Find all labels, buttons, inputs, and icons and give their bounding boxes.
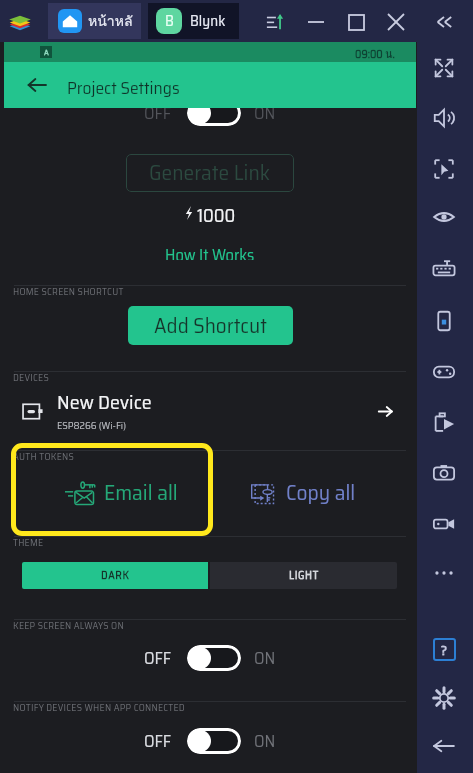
button[interactable]: Add Shortcut: [128, 306, 293, 345]
button[interactable]: Upload: [261, 8, 289, 36]
button[interactable]: Phone: [430, 307, 458, 335]
button[interactable]: Eye: [430, 203, 458, 231]
staticText: ON: [254, 108, 276, 126]
button[interactable]: Maximize: [342, 8, 370, 36]
staticText: DEVICES: [13, 370, 49, 385]
button[interactable]: Gamepad: [430, 358, 458, 386]
button[interactable]: Copy all: [210, 452, 416, 533]
staticText: ?: [441, 639, 448, 661]
button[interactable]: Email all: [4, 452, 210, 533]
button[interactable]: หน้าหลั: [48, 3, 141, 39]
button[interactable]: Close: [382, 8, 410, 36]
staticText: AUTH TOKENS: [13, 449, 75, 464]
button[interactable]: More: [430, 559, 458, 587]
staticText: New Device: [57, 386, 152, 417]
staticText: ESP8266 (Wi-Fi): [57, 417, 127, 433]
button[interactable]: How It Works: [157, 238, 263, 264]
staticText: DARK: [101, 567, 130, 584]
staticText: หน้าหลั: [88, 10, 133, 32]
button[interactable]: Generate Link: [126, 154, 294, 192]
staticText: NOTIFY DEVICES WHEN APP CONNECTED: [13, 700, 185, 715]
button[interactable]: Keyboard: [430, 256, 458, 284]
staticText: HOME SCREEN SHORTCUT: [13, 284, 124, 299]
staticText: A: [44, 46, 49, 58]
staticText: OFF: [144, 728, 172, 755]
staticText: 09:00 น.: [355, 45, 395, 62]
staticText: Project Settings: [67, 74, 180, 102]
button[interactable]: B: [148, 3, 239, 39]
button[interactable]: Help: [430, 635, 458, 663]
button[interactable]: OFF: [4, 716, 416, 766]
staticText: KEEP SCREEN ALWAYS ON: [13, 618, 124, 633]
button[interactable]: Record: [430, 510, 458, 538]
staticText: OFF: [144, 108, 172, 126]
button[interactable]: OFF: [4, 633, 416, 683]
button[interactable]: New Device: [4, 380, 416, 443]
staticText: How It Works: [165, 242, 255, 260]
staticText: Email all: [104, 476, 178, 510]
staticText: Copy all: [286, 476, 356, 510]
button[interactable]: Fullscreen: [430, 54, 458, 82]
button[interactable]: Collapse sidebar: [430, 8, 458, 36]
button[interactable]: LIGHT: [210, 562, 397, 589]
button[interactable]: Settings: [430, 684, 458, 712]
button[interactable]: DARK: [22, 562, 208, 589]
staticText: OFF: [144, 645, 172, 672]
button[interactable]: Script: [430, 409, 458, 437]
button[interactable]: Volume: [430, 104, 458, 132]
staticText: Blynk: [190, 9, 226, 33]
staticText: B: [165, 9, 174, 33]
button[interactable]: Minimize: [302, 8, 330, 36]
staticText: ON: [254, 645, 276, 672]
staticText: LIGHT: [289, 567, 319, 584]
button[interactable]: OFF: [4, 108, 416, 126]
staticText: ON: [254, 728, 276, 755]
button[interactable]: Pointer: [430, 155, 458, 183]
staticText: Add Shortcut: [154, 309, 267, 342]
staticText: 1000: [197, 201, 236, 225]
button[interactable]: Screenshot: [430, 459, 458, 487]
button[interactable]: Back: [430, 732, 458, 760]
staticText: THEME: [13, 535, 44, 550]
staticText: Generate Link: [149, 156, 271, 190]
button[interactable]: Back: [14, 62, 60, 108]
